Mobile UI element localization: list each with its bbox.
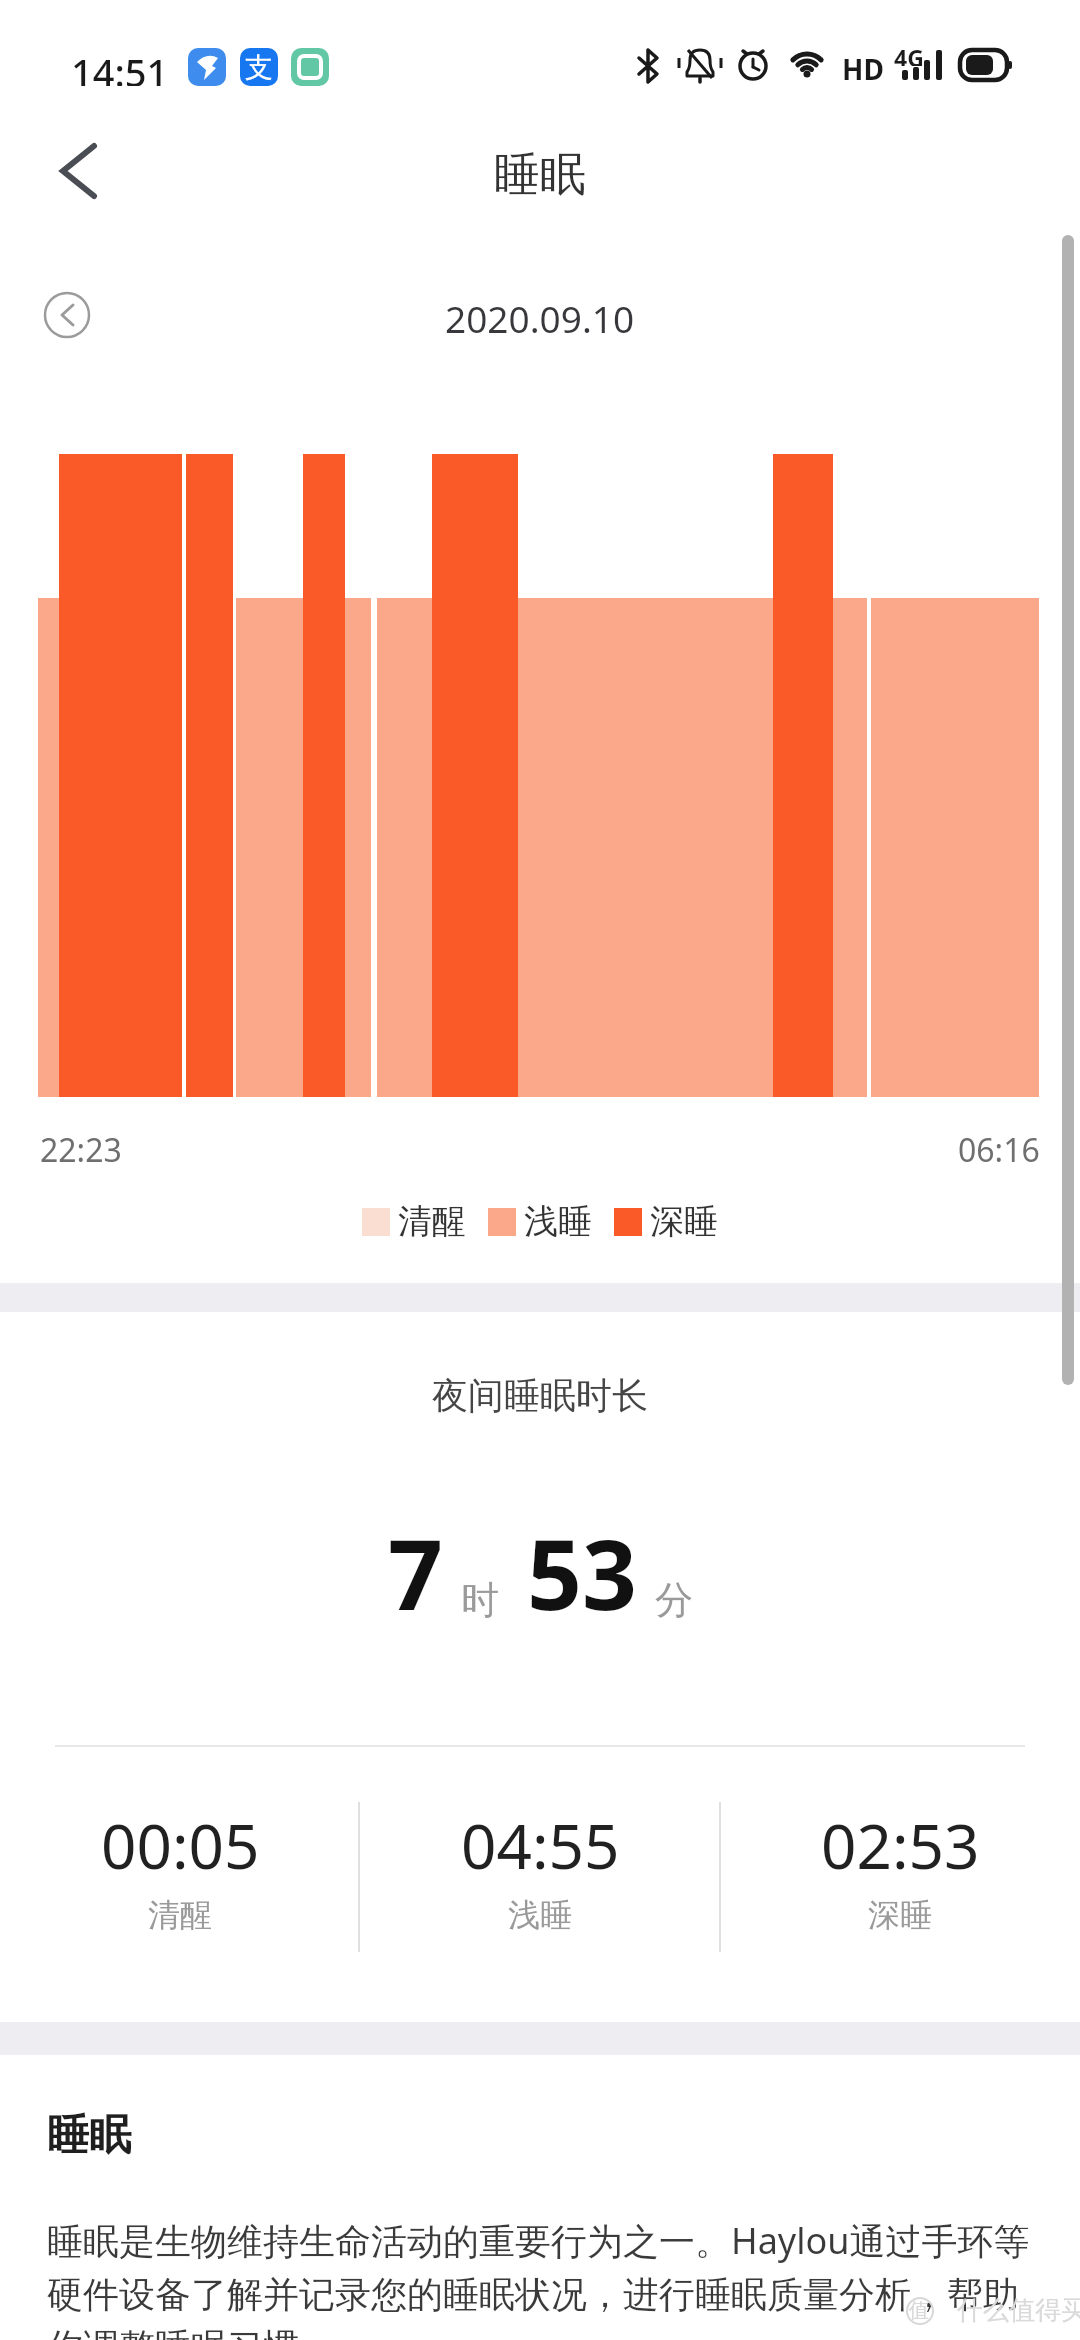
staticText: 浅睡 [524,1200,592,1243]
staticText: HD [842,50,884,84]
staticText: 清醒 [398,1200,466,1243]
button[interactable] [35,283,99,347]
staticText: 值 [909,2298,929,2323]
staticText: 14:51 [71,46,169,86]
staticText: 7 [388,1507,443,1638]
button[interactable] [40,130,120,210]
staticText: 睡眠 [494,146,586,198]
staticText: 清醒 [148,1895,212,1935]
staticText: 00:05 [101,1803,260,1887]
staticText: 深睡 [868,1895,932,1935]
staticText: 分 [655,1576,693,1624]
staticText: 22:23 [40,1128,122,1168]
staticText: 04:55 [461,1803,620,1887]
staticText: 深睡 [650,1200,718,1243]
staticText: 06:16 [958,1128,1040,1168]
staticText: 时 [461,1576,499,1624]
staticText: 2020.09.10 [445,293,635,341]
staticText: 浅睡 [508,1895,572,1935]
staticText: 睡眠是生物维持生命活动的重要行为之一。Haylou通过手环等 硬件设备了解并记录… [47,2216,1080,2340]
staticText: 支 [245,50,273,85]
staticText: 什么值得买 [957,2294,1080,2327]
staticText: 4G [894,42,924,66]
staticText: 睡眠 [47,2109,131,2162]
staticText: 53 [527,1507,637,1638]
staticText: 夜间睡眠时长 [432,1373,648,1417]
staticText: 02:53 [821,1803,980,1887]
